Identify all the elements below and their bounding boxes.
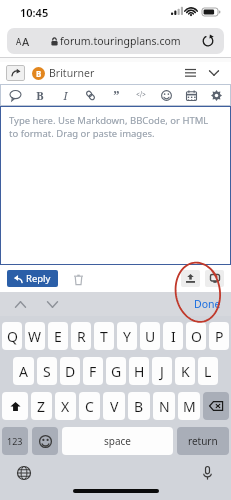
button[interactable]: Delete draft <box>70 271 86 287</box>
button[interactable]: Dictate <box>197 463 217 483</box>
button[interactable]: C <box>79 392 100 420</box>
button[interactable]: Next field <box>42 294 62 314</box>
staticText: A <box>19 362 28 381</box>
button[interactable]: Change keyboard <box>14 463 34 483</box>
staticText: I <box>171 327 176 346</box>
button[interactable]: Quote <box>107 86 125 104</box>
button[interactable]: </> <box>132 86 150 104</box>
staticText: Done <box>194 297 221 311</box>
button[interactable]: T <box>94 322 114 350</box>
button[interactable]: 123 <box>2 427 28 455</box>
button[interactable]: K <box>175 357 195 385</box>
button[interactable]: A <box>7 28 224 54</box>
staticText: Type here. Use Markdown, BBCode, or HTML… <box>9 114 211 140</box>
button[interactable]: Emoji <box>157 86 175 104</box>
staticText: T <box>100 327 108 346</box>
button[interactable]: I <box>163 322 183 350</box>
staticText: Q <box>7 327 18 346</box>
button[interactable]: Backspace <box>203 392 229 420</box>
staticText: N <box>159 397 170 416</box>
button[interactable]: H <box>129 357 149 385</box>
button[interactable]: U <box>140 322 160 350</box>
staticText: K <box>181 362 190 381</box>
staticText: 123 <box>7 435 23 447</box>
button[interactable]: space <box>62 427 173 455</box>
button[interactable]: W <box>25 322 45 350</box>
button[interactable]: Reply to post <box>6 65 25 81</box>
button[interactable]: Comment <box>6 86 24 104</box>
staticText: C <box>85 397 94 416</box>
button[interactable]: Collapse <box>205 64 223 82</box>
button[interactable]: A <box>13 357 34 385</box>
staticText: Y <box>123 327 131 346</box>
button[interactable]: F <box>83 357 103 385</box>
staticText: forum.touringplans.com <box>60 34 181 48</box>
staticText: B <box>36 68 42 79</box>
staticText: H <box>134 362 145 381</box>
button[interactable]: R <box>71 322 91 350</box>
button[interactable]: Italic <box>56 86 74 104</box>
staticText: J <box>160 362 164 381</box>
button[interactable]: V <box>103 392 125 420</box>
button[interactable]: Calendar <box>182 86 200 104</box>
button[interactable]: X <box>55 392 76 420</box>
staticText: ” <box>113 86 120 104</box>
button[interactable]: N <box>153 392 175 420</box>
button[interactable]: Code <box>132 86 150 104</box>
button[interactable]: Upload <box>181 270 200 287</box>
staticText: S <box>43 362 51 381</box>
button[interactable]: Bold <box>31 86 49 104</box>
staticText: L <box>204 362 212 381</box>
button[interactable]: ” <box>107 86 125 104</box>
staticText: </> <box>136 90 146 100</box>
staticText: R <box>77 327 86 346</box>
button[interactable]: I <box>56 86 74 104</box>
button[interactable]: Reload <box>200 33 216 49</box>
staticText: Z <box>37 397 46 416</box>
staticText: V <box>110 397 119 416</box>
button[interactable]: Done <box>194 297 221 311</box>
button[interactable]: D <box>60 357 80 385</box>
staticText: D <box>65 362 76 381</box>
staticText: 10:45 <box>20 5 49 20</box>
button[interactable]: L <box>198 357 218 385</box>
button[interactable]: Link <box>81 86 99 104</box>
button[interactable]: P <box>209 322 229 350</box>
staticText: return <box>188 434 218 448</box>
button[interactable]: O <box>186 322 206 350</box>
staticText: Briturner <box>49 66 95 80</box>
button[interactable]: B <box>128 392 150 420</box>
button[interactable]: J <box>152 357 172 385</box>
staticText: X <box>61 397 70 416</box>
button[interactable]: Shift <box>2 392 28 420</box>
staticText: Reply <box>26 272 51 285</box>
button[interactable]: Emoji <box>32 427 58 455</box>
button[interactable]: M <box>178 392 200 420</box>
button[interactable]: Q <box>2 322 22 350</box>
button[interactable]: Previous field <box>10 294 30 314</box>
button[interactable]: G <box>106 357 126 385</box>
button[interactable]: Reply <box>14 270 51 287</box>
staticText: B <box>36 88 44 103</box>
staticText: space <box>104 434 131 448</box>
button[interactable]: return <box>177 427 229 455</box>
staticText: A <box>16 36 22 47</box>
staticText: W <box>28 327 42 346</box>
staticText: O <box>191 327 202 346</box>
button[interactable]: B <box>31 86 49 104</box>
staticText: G <box>111 362 122 381</box>
staticText: U <box>145 327 156 346</box>
button[interactable]: S <box>37 357 57 385</box>
button[interactable]: Y <box>117 322 137 350</box>
staticText: I <box>63 88 68 103</box>
staticText: F <box>89 362 97 381</box>
button[interactable]: Menu <box>181 64 199 82</box>
staticText: B <box>134 397 144 416</box>
button[interactable]: Settings <box>207 86 225 104</box>
staticText: M <box>183 397 196 416</box>
button[interactable]: Preview <box>205 270 224 287</box>
button[interactable]: E <box>48 322 68 350</box>
button[interactable]: Z <box>31 392 52 420</box>
staticText: A <box>22 34 30 49</box>
staticText: E <box>54 327 62 346</box>
